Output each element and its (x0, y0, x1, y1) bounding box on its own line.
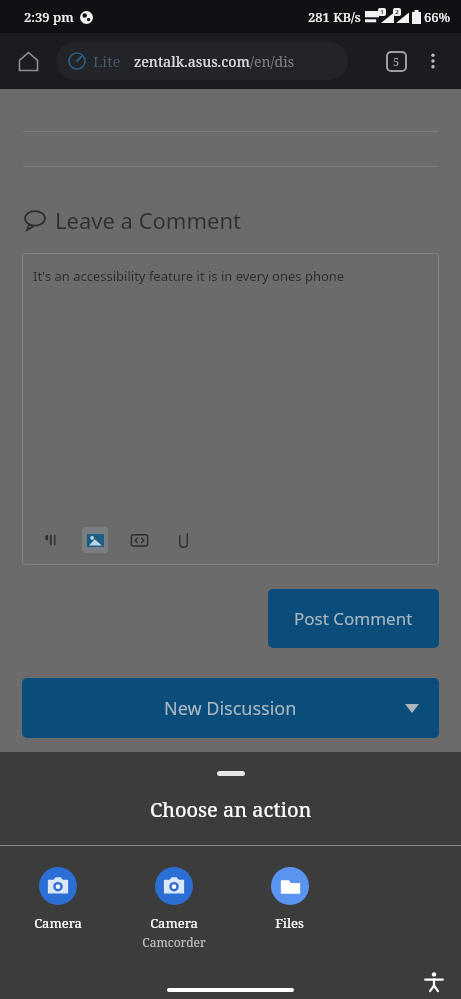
staticText: Lite (93, 51, 121, 71)
button[interactable]: Files (251, 867, 328, 932)
button[interactable]: Attach file (170, 527, 196, 553)
staticText: 281 KB/s (308, 8, 361, 26)
button[interactable]: Paragraph (38, 527, 64, 553)
button[interactable]: Lite (56, 42, 348, 80)
staticText: New Discussion (164, 696, 297, 721)
staticText: Files (275, 914, 304, 932)
staticText: 1 (380, 8, 384, 16)
button[interactable]: Insert code (126, 527, 152, 553)
button[interactable]: New Discussion (22, 678, 439, 738)
staticText: /en/dis (250, 52, 294, 71)
staticText: It's an accessibility feature it is in e… (33, 267, 345, 285)
staticText: Post Comment (294, 607, 413, 630)
staticText: Camcorder (142, 934, 206, 950)
staticText: Choose an action (150, 796, 312, 823)
button[interactable]: Tabs (379, 44, 413, 78)
staticText: Camera (150, 914, 198, 932)
staticText: zentalk.asus.com (134, 52, 250, 71)
button[interactable]: More options (415, 43, 451, 79)
staticText: 66% (424, 8, 451, 26)
button[interactable]: Home (8, 41, 48, 81)
button[interactable]: Post Comment (268, 589, 439, 648)
staticText: 2 (395, 8, 399, 16)
staticText: 5 (393, 54, 400, 69)
staticText: Leave a Comment (55, 205, 241, 235)
button[interactable]: Camera (135, 867, 212, 950)
button[interactable]: Insert image (82, 527, 108, 553)
staticText: 2:39 pm (24, 8, 74, 26)
button[interactable]: Accessibility (421, 969, 447, 995)
button[interactable]: Camera (19, 867, 96, 932)
staticText: Camera (34, 914, 82, 932)
